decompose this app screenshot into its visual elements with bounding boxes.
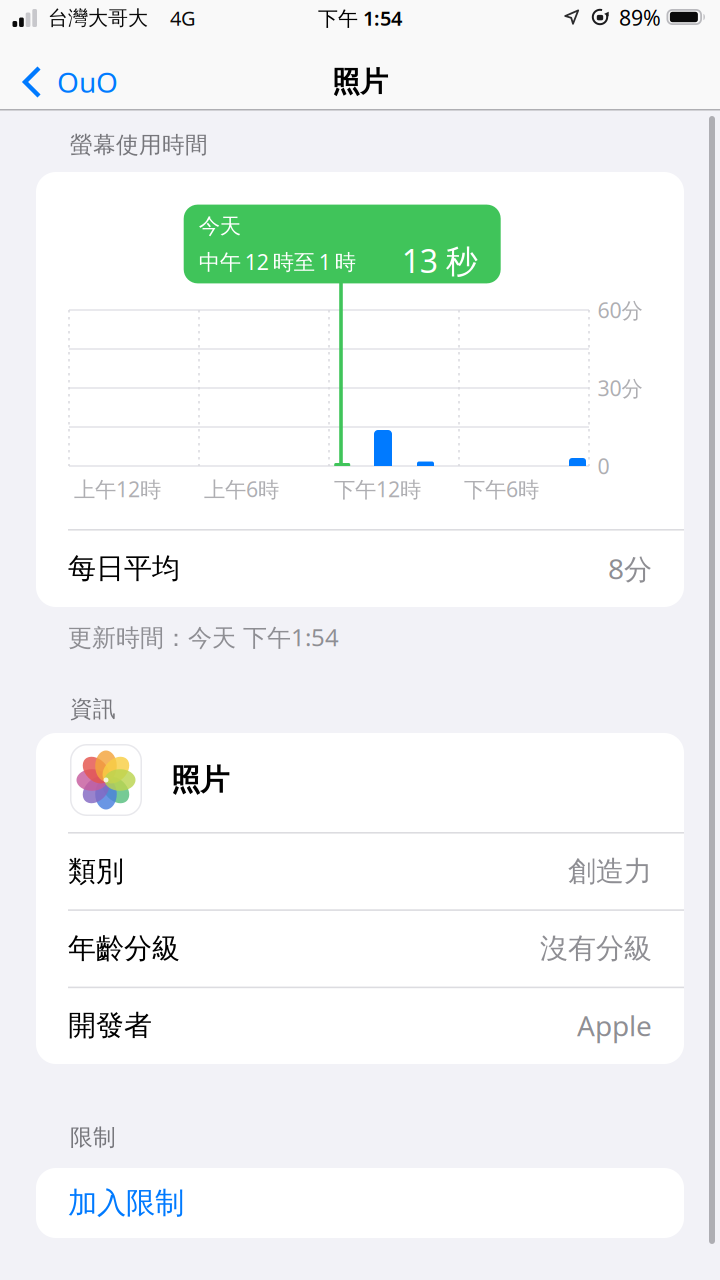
button[interactable]: Back xyxy=(22,54,118,110)
staticText: 下午6時 xyxy=(464,475,539,503)
staticText: OuO xyxy=(57,63,118,101)
staticText: 下午 1:54 xyxy=(318,5,402,31)
staticText: 上午6時 xyxy=(204,475,279,503)
staticText: 13 秒 xyxy=(402,239,478,282)
staticText: 8分 xyxy=(608,550,652,587)
staticText: 中午 12 時至 1 時 xyxy=(199,247,356,276)
staticText: 類別 xyxy=(68,854,124,889)
staticText: 台灣大哥大 xyxy=(48,6,148,30)
staticText: 今天 xyxy=(199,213,241,239)
staticText: 資訊 xyxy=(70,695,116,723)
staticText: 30分 xyxy=(597,374,642,402)
staticText: 創造力 xyxy=(568,854,652,889)
staticText: 照片 xyxy=(332,65,388,99)
staticText: 照片 xyxy=(171,762,229,798)
staticText: 開發者 xyxy=(68,1008,152,1043)
staticText: 每日平均 xyxy=(68,551,180,586)
staticText: 年齡分級 xyxy=(68,931,180,966)
staticText: 上午12時 xyxy=(74,475,161,503)
staticText: 89% xyxy=(619,3,661,32)
staticText: 限制 xyxy=(70,1124,116,1151)
staticText: 60分 xyxy=(597,296,642,324)
staticText: 沒有分級 xyxy=(540,931,652,966)
staticText: 加入限制 xyxy=(68,1185,184,1221)
staticText: 下午12時 xyxy=(334,475,421,503)
staticText: 4G xyxy=(170,5,196,31)
staticText: 0 xyxy=(597,452,609,480)
staticText: 更新時間：今天 下午1:54 xyxy=(68,621,339,653)
button[interactable]: 加入限制 xyxy=(36,1168,684,1238)
staticText: 螢幕使用時間 xyxy=(70,131,208,159)
staticText: Apple xyxy=(577,1007,652,1044)
